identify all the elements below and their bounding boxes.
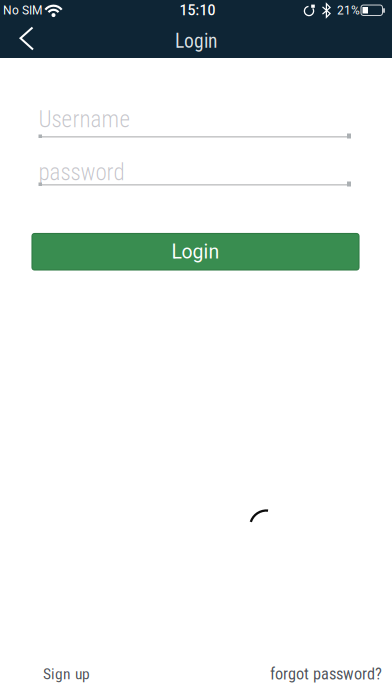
button[interactable]: forgot password? (270, 664, 382, 683)
staticText: password (38, 159, 124, 186)
staticText: Username (38, 106, 130, 133)
button[interactable]: Back (1, 20, 45, 58)
staticText: forgot password? (270, 664, 382, 683)
button[interactable]: Login (32, 233, 359, 270)
staticText: Login (175, 30, 217, 52)
button[interactable]: Username (38, 102, 350, 136)
staticText: 15:10 (179, 2, 215, 19)
button[interactable]: password (38, 155, 350, 189)
button[interactable]: Sign up (43, 665, 90, 683)
staticText: Sign up (43, 665, 90, 683)
staticText: 21% (337, 3, 360, 18)
staticText: Login (171, 240, 219, 263)
staticText: No SIM (3, 3, 42, 18)
